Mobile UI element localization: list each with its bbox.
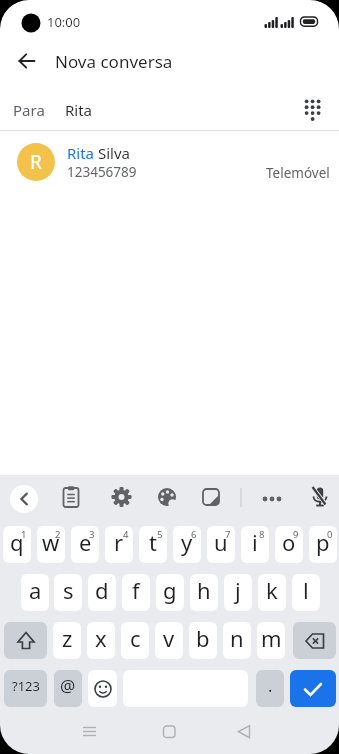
staticText: v [163, 623, 175, 653]
staticText: ?123 [12, 677, 40, 695]
button[interactable]: i [241, 526, 269, 563]
button[interactable]: u [207, 526, 235, 563]
staticText: l [303, 575, 309, 605]
button[interactable]: a [21, 574, 49, 611]
button[interactable] [10, 485, 38, 513]
staticText: c [130, 623, 141, 653]
button[interactable]: r [105, 526, 133, 563]
button[interactable]: @ [54, 670, 82, 707]
button[interactable]: j [224, 574, 252, 611]
staticText: e [79, 527, 92, 557]
button[interactable]: e [71, 526, 99, 563]
staticText: 10:00 [47, 13, 81, 31]
staticText: 3 [89, 528, 95, 541]
button[interactable]: v [155, 622, 183, 659]
staticText: d [95, 575, 109, 605]
staticText: u [214, 527, 228, 557]
button[interactable]: ?123 [4, 670, 47, 707]
button[interactable]: l [292, 574, 320, 611]
staticText: 0 [327, 528, 333, 541]
staticText: g [163, 575, 177, 605]
button[interactable]: o [275, 526, 303, 563]
staticText: Para [13, 100, 45, 120]
staticText: 123456789 [67, 163, 137, 181]
button[interactable]: g [156, 574, 184, 611]
button[interactable]: n [223, 622, 251, 659]
staticText: r [114, 527, 124, 557]
button[interactable]: t [139, 526, 167, 563]
staticText: 2 [55, 528, 61, 541]
button[interactable] [0, 90, 339, 130]
staticText: n [230, 623, 244, 653]
button[interactable] [4, 622, 47, 659]
button[interactable]: . [256, 670, 284, 707]
staticText: w [42, 527, 60, 557]
staticText: . [268, 675, 273, 697]
button[interactable]: p [309, 526, 337, 563]
staticText: x [95, 623, 107, 653]
staticText: z [62, 623, 73, 653]
staticText: q [10, 527, 24, 557]
button[interactable]: f [122, 574, 150, 611]
staticText: 7 [225, 528, 231, 541]
staticText: @ [60, 674, 76, 697]
staticText: 6 [191, 528, 197, 541]
button[interactable]: h [190, 574, 218, 611]
button[interactable] [293, 622, 336, 659]
staticText: 4 [123, 528, 129, 541]
staticText: Telemóvel [266, 164, 330, 182]
staticText: j [235, 575, 241, 605]
staticText: 8 [259, 528, 265, 541]
staticText: y [181, 527, 193, 557]
button[interactable]: R [0, 137, 339, 186]
button[interactable]: m [257, 622, 285, 659]
button[interactable] [88, 670, 117, 707]
button[interactable] [290, 670, 336, 707]
staticText: s [63, 575, 74, 605]
staticText: i [252, 527, 258, 557]
staticText: 1 [21, 528, 27, 541]
button[interactable]: x [87, 622, 115, 659]
staticText: R [30, 149, 42, 175]
staticText: b [196, 623, 210, 653]
staticText: 9 [293, 528, 299, 541]
button[interactable]: d [88, 574, 116, 611]
button[interactable]: w [37, 526, 65, 563]
staticText: h [197, 575, 211, 605]
button[interactable]: y [173, 526, 201, 563]
staticText: o [282, 527, 296, 557]
button[interactable]: z [53, 622, 81, 659]
button[interactable]: q [3, 526, 31, 563]
staticText: p [316, 527, 330, 557]
staticText: Rita Silva [67, 143, 130, 163]
staticText: a [29, 575, 42, 605]
button[interactable]: k [258, 574, 286, 611]
button[interactable] [11, 45, 43, 77]
staticText: m [261, 623, 282, 653]
staticText: Rita [65, 100, 93, 120]
staticText: Nova conversa [55, 50, 173, 73]
button[interactable]: s [54, 574, 82, 611]
staticText: 5 [157, 528, 163, 541]
button[interactable]: b [189, 622, 217, 659]
button[interactable]: c [121, 622, 149, 659]
staticText: k [266, 575, 278, 605]
staticText: f [132, 575, 140, 605]
staticText: t [149, 527, 157, 557]
